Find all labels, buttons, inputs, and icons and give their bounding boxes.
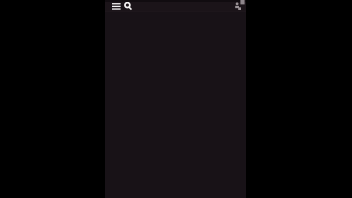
button[interactable]: Search bbox=[123, 1, 134, 11]
button[interactable]: Menu bbox=[110, 0, 123, 11]
button[interactable]: Account bbox=[234, 1, 242, 11]
